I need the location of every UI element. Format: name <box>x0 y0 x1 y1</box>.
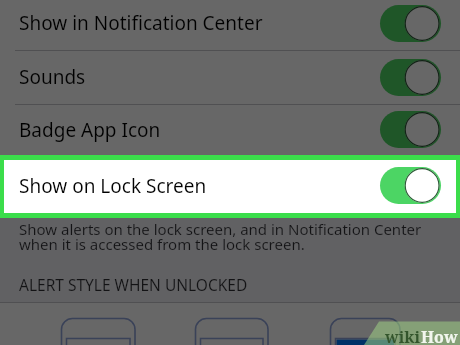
button[interactable]: Show on Lock Screen <box>4 160 456 213</box>
staticText: Show in Notification Center <box>19 10 263 36</box>
button[interactable]: Show in Notification Center <box>0 0 460 50</box>
button[interactable]: Show on Lock Screen <box>380 167 441 204</box>
button[interactable]: Badge App Icon <box>380 111 441 148</box>
staticText: Sounds <box>19 64 86 90</box>
staticText: ALERT STYLE WHEN UNLOCKED <box>19 274 248 295</box>
button[interactable]: Badge App Icon <box>0 104 460 155</box>
staticText: Badge App Icon <box>19 117 161 143</box>
button[interactable]: Alerts alert style <box>306 302 460 345</box>
button[interactable]: Banners alert style <box>153 302 306 345</box>
button[interactable]: Sounds <box>0 50 460 104</box>
button[interactable]: Show in Notification Center <box>380 5 441 42</box>
staticText: wiki <box>385 326 421 345</box>
staticText: Show on Lock Screen <box>19 173 207 199</box>
staticText: How <box>421 326 458 345</box>
button[interactable]: None alert style <box>0 302 153 345</box>
button[interactable]: Sounds <box>380 59 441 96</box>
staticText: Show alerts on the lock screen, and in N… <box>19 219 422 255</box>
